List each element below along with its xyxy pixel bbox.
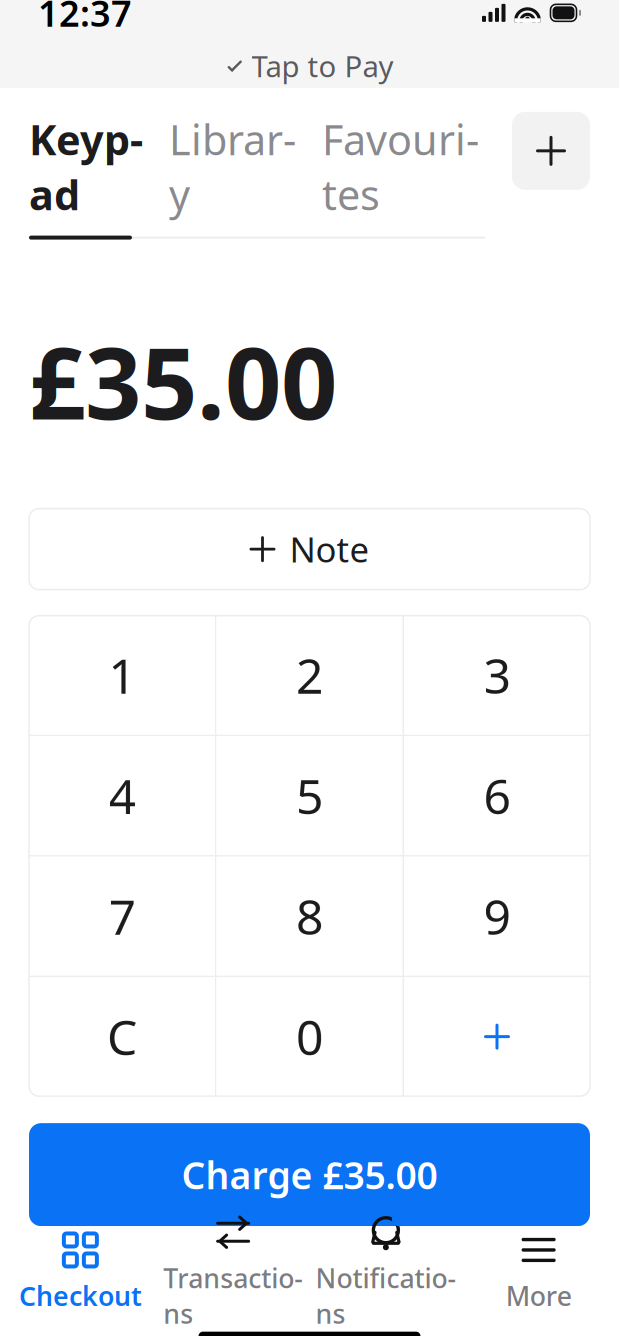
staticText: 7 (108, 884, 135, 948)
staticText: Checkout (19, 1278, 142, 1313)
staticText: Note (289, 526, 369, 572)
button[interactable]: 1 (29, 616, 215, 735)
button[interactable]: 9 (404, 857, 590, 976)
button[interactable]: Checkout (4, 1229, 157, 1315)
staticText: 12:37 (38, 0, 132, 37)
staticText: 6 (483, 764, 510, 827)
staticText: 5 (296, 764, 323, 827)
button[interactable]: Favourites (322, 112, 479, 222)
button[interactable]: C (29, 977, 215, 1096)
staticText: 3 (483, 643, 510, 707)
staticText: Favourites (322, 112, 479, 222)
button[interactable]: 0 (216, 977, 402, 1096)
button[interactable]: 2 (216, 616, 402, 735)
staticText: Tap to Pay (251, 46, 393, 85)
staticText: Transactions (163, 1260, 303, 1331)
button[interactable]: 7 (29, 857, 215, 976)
button[interactable]: 8 (216, 857, 402, 976)
button[interactable]: Add (404, 977, 590, 1096)
button[interactable]: 5 (216, 736, 402, 855)
staticText: Library (169, 112, 296, 222)
button[interactable]: Charge £35.00 (29, 1123, 590, 1226)
button[interactable]: Library (169, 112, 296, 222)
button[interactable]: Keypad (29, 112, 143, 222)
staticText: Keypad (29, 112, 143, 222)
staticText: More (506, 1278, 572, 1313)
button[interactable]: Add item (512, 112, 590, 190)
staticText: 8 (296, 884, 323, 948)
staticText: 0 (296, 1005, 323, 1068)
button[interactable]: 4 (29, 736, 215, 855)
staticText: £35.00 (29, 316, 337, 447)
staticText: C (107, 1005, 137, 1068)
button[interactable]: Note (29, 509, 590, 590)
staticText: 1 (108, 643, 135, 707)
staticText: 9 (483, 884, 510, 948)
staticText: 2 (296, 643, 323, 707)
button[interactable]: 3 (404, 616, 590, 735)
button[interactable]: 6 (404, 736, 590, 855)
staticText: Notifications (315, 1260, 456, 1331)
button[interactable]: More (462, 1229, 615, 1315)
button[interactable]: Notifications (309, 1229, 462, 1315)
staticText: 4 (108, 764, 135, 827)
button[interactable]: Transactions (157, 1229, 310, 1315)
staticText: Charge £35.00 (181, 1150, 437, 1199)
